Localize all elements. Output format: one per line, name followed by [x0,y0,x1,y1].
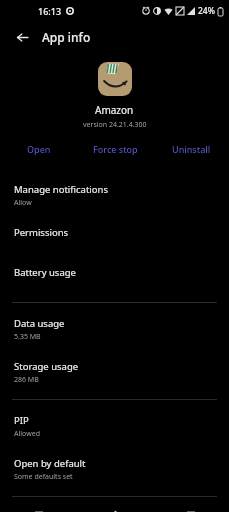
staticText: Force stop [93,143,138,155]
button[interactable]: Open [0,136,77,162]
staticText: version 24.21.4.300 [83,120,147,130]
button[interactable]: Manage notifications [0,174,229,217]
staticText: 24% [198,5,215,17]
button[interactable]: PIP [0,405,229,448]
staticText: Battery usage [14,266,76,279]
staticText: PIP [14,414,29,427]
button[interactable]: Back [11,26,33,48]
staticText: Allow [14,198,32,208]
button[interactable]: Force stop [77,136,153,162]
staticText: Open [27,143,51,155]
button[interactable]: Permissions [0,217,229,257]
staticText: Data usage [14,317,65,330]
button[interactable]: Data usage [0,308,229,351]
staticText: Uninstall [172,143,211,155]
staticText: Open by default [14,457,86,470]
staticText: Manage notifications [14,183,108,196]
staticText: Amazon [95,103,134,117]
staticText: Storage usage [14,360,79,373]
staticText: 286 MB [14,375,39,385]
staticText: Some defaults set [14,472,73,482]
staticText: App info [42,29,91,45]
staticText: 5.35 MB [14,332,41,342]
button[interactable]: Storage usage [0,351,229,394]
button[interactable]: Uninstall [153,136,229,162]
button[interactable]: Battery usage [0,257,229,297]
staticText: Permissions [14,226,69,239]
staticText: Allowed [14,429,40,439]
staticText: 16:13 [38,5,62,17]
button[interactable]: Open by default [0,448,229,491]
